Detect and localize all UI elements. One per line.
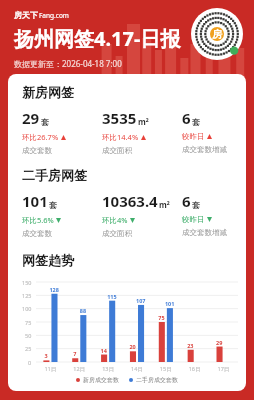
staticText: 6 [182, 191, 191, 211]
staticText: 较昨日 [182, 215, 205, 224]
staticText: 二手房成交套数 [136, 376, 178, 384]
button[interactable]: 6 [182, 108, 232, 154]
staticText: 套 [41, 117, 49, 127]
staticText: 成交套数 [22, 146, 52, 155]
button[interactable]: 101 [22, 191, 102, 238]
staticText: 成交面积 [102, 229, 132, 238]
button[interactable]: 29 [22, 108, 102, 155]
staticText: 29 [22, 108, 40, 128]
staticText: 3535 [102, 108, 137, 128]
button[interactable]: 房天下官方印章 [191, 8, 243, 60]
staticText: 成交套数 [22, 229, 52, 238]
staticText: 房 [212, 28, 222, 41]
staticText: 扬州网签4.17-日报 [14, 25, 181, 52]
staticText: 套 [192, 117, 200, 127]
staticText: 成交面积 [102, 146, 132, 155]
staticText: 环比26.7% [22, 132, 59, 142]
staticText: 网签趋势 [22, 252, 74, 268]
staticText: 101 [22, 191, 48, 211]
staticText: 环比5.6% [22, 215, 54, 225]
staticText: 10363.4 [102, 191, 158, 211]
staticText: 房天下 [14, 10, 38, 20]
staticText: Fang.com [39, 11, 69, 20]
staticText: 环比4% [102, 215, 128, 225]
staticText: 套 [49, 200, 57, 210]
staticText: 新房成交套数 [83, 376, 119, 384]
staticText: 成交套数增减 [182, 145, 227, 154]
button[interactable]: 新房成交套数 [8, 376, 246, 384]
staticText: 二手房网签 [22, 167, 87, 183]
staticText: 数据更新至：2026-04-18 7:00 [14, 58, 122, 69]
button[interactable]: 6 [182, 191, 232, 237]
staticText: 6 [182, 108, 191, 128]
button[interactable]: 10363.4 [102, 191, 182, 238]
staticText: m² [159, 199, 170, 210]
staticText: m² [138, 116, 149, 127]
staticText: 成交套数增减 [182, 228, 227, 237]
staticText: 套 [192, 200, 200, 210]
staticText: 新房网签 [22, 84, 74, 100]
staticText: 环比14.4% [102, 132, 139, 142]
button[interactable]: 3535 [102, 108, 182, 155]
staticText: 较昨日 [182, 132, 205, 141]
